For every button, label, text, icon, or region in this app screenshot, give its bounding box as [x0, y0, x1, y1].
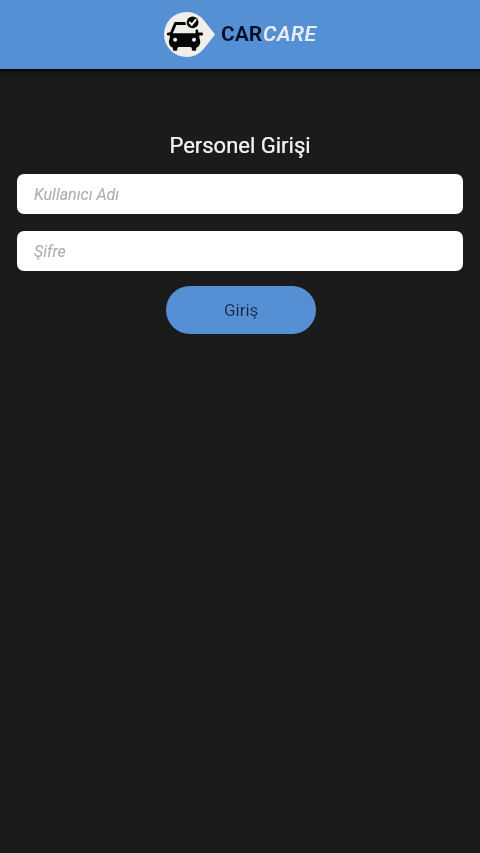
- staticText: Personel Girişi: [0, 133, 480, 159]
- other: CarCare logo: [164, 12, 215, 57]
- staticText: Şifre: [34, 242, 66, 261]
- staticText: Giriş: [224, 300, 259, 320]
- staticText: CAR: [221, 22, 263, 47]
- button[interactable]: Giriş: [166, 286, 316, 334]
- staticText: CARE: [263, 22, 317, 47]
- button[interactable]: Şifre: [17, 231, 463, 271]
- button[interactable]: Kullanıcı Adı: [17, 174, 463, 214]
- staticText: Kullanıcı Adı: [34, 185, 120, 204]
